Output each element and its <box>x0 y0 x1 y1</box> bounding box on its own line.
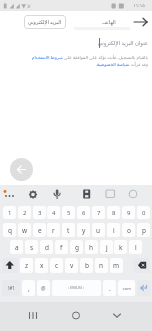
staticText: .com <box>122 286 131 291</box>
button[interactable]: v <box>65 258 78 273</box>
staticText: 6 <box>82 209 86 217</box>
button[interactable]: 2 <box>18 206 31 219</box>
button[interactable]: n <box>95 258 108 273</box>
button[interactable]: 8 <box>107 206 120 219</box>
button[interactable]: o <box>122 223 135 237</box>
staticText: الهاتف <box>102 19 116 25</box>
staticText: 3 <box>38 209 42 217</box>
staticText: p <box>142 226 146 235</box>
button[interactable]: x <box>35 258 48 273</box>
button[interactable]: البريد الإلكتروني <box>24 15 66 29</box>
button[interactable]: f <box>55 240 68 254</box>
button[interactable]: l <box>129 240 142 254</box>
staticText: , <box>28 284 30 293</box>
staticText: c <box>55 261 59 270</box>
staticText: ١١:١٥ <box>129 2 149 9</box>
staticText: s <box>30 243 34 252</box>
staticText: j <box>106 243 108 252</box>
button[interactable]: w <box>18 223 31 237</box>
button[interactable]: 1 <box>3 206 16 219</box>
staticText: w <box>22 226 28 235</box>
button[interactable]: .com <box>118 280 135 296</box>
button[interactable]: 5 <box>62 206 75 219</box>
button[interactable]: الهاتف <box>95 15 123 29</box>
button[interactable] <box>52 280 101 296</box>
button[interactable]: s <box>25 240 38 254</box>
button[interactable]: 6 <box>77 206 90 219</box>
staticText: v <box>70 261 74 270</box>
staticText: m <box>113 261 120 270</box>
button[interactable]: j <box>100 240 113 254</box>
staticText: i <box>113 226 115 235</box>
button[interactable]: b <box>80 258 93 273</box>
staticText: q <box>8 226 12 235</box>
staticText: o <box>127 226 131 235</box>
staticText: 9 <box>127 209 131 217</box>
staticText: بالقيام بالتسجيل، فأنت تؤكد على الموافقة… <box>31 54 148 67</box>
button[interactable]: 9 <box>122 206 135 219</box>
staticText: e <box>38 226 42 235</box>
button[interactable] <box>2 258 18 273</box>
button[interactable]: k <box>114 240 127 254</box>
staticText: g <box>75 243 79 252</box>
button[interactable]: z <box>20 258 33 273</box>
staticText: x <box>40 261 44 270</box>
staticText: . <box>109 284 111 293</box>
staticText: !#1 <box>8 285 15 291</box>
staticText: عنوان البريد الإلكتروني <box>97 39 148 46</box>
staticText: 8 <box>112 209 116 217</box>
staticText: 5 <box>67 209 71 217</box>
staticText: 1 <box>8 209 12 217</box>
staticText: n <box>99 261 104 270</box>
button[interactable]: 4 <box>47 206 60 219</box>
staticText: @ <box>41 285 46 292</box>
button[interactable]: 3 <box>33 206 46 219</box>
staticText: u <box>96 226 101 235</box>
staticText: h <box>89 243 94 252</box>
staticText: 0 <box>142 209 146 217</box>
button[interactable]: c <box>50 258 63 273</box>
staticText: a <box>15 243 19 252</box>
button[interactable]: u <box>92 223 105 237</box>
staticText: z <box>25 261 29 270</box>
button[interactable]: y <box>77 223 90 237</box>
staticText: t <box>67 226 70 235</box>
button[interactable]: h <box>85 240 98 254</box>
button[interactable]: g <box>70 240 83 254</box>
staticText: k <box>119 243 123 252</box>
staticText: 2 <box>23 209 27 217</box>
button[interactable]: d <box>40 240 53 254</box>
button[interactable]: . <box>103 280 116 296</box>
button[interactable]: e <box>33 223 46 237</box>
button[interactable]: @ <box>37 280 50 296</box>
button[interactable]: i <box>107 223 120 237</box>
staticText: البريد الإلكتروني <box>28 19 62 26</box>
staticText: 7 <box>97 209 101 217</box>
staticText: b <box>85 261 89 270</box>
button[interactable] <box>131 15 149 29</box>
button[interactable]: 7 <box>92 206 105 219</box>
button[interactable]: t <box>62 223 75 237</box>
button[interactable]: !#1 <box>2 280 20 296</box>
button[interactable] <box>65 305 87 325</box>
button[interactable] <box>10 158 33 181</box>
staticText: d <box>45 243 49 252</box>
button[interactable] <box>134 258 150 273</box>
staticText: l <box>135 243 137 252</box>
button[interactable]: 0 <box>137 206 150 219</box>
button[interactable]: m <box>110 258 123 273</box>
staticText: ‹ EN(US) › <box>58 285 94 290</box>
button[interactable] <box>22 305 44 325</box>
button[interactable]: , <box>22 280 35 296</box>
staticText: y <box>82 226 86 235</box>
staticText: f <box>60 243 63 252</box>
button[interactable] <box>106 305 128 325</box>
button[interactable] <box>137 280 151 296</box>
button[interactable]: q <box>3 223 16 237</box>
button[interactable]: a <box>10 240 23 254</box>
staticText: r <box>52 226 55 235</box>
button[interactable]: p <box>137 223 150 237</box>
staticText: 4 <box>52 209 56 217</box>
button[interactable]: r <box>47 223 60 237</box>
